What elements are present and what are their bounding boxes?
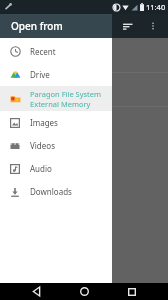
button[interactable]: Audio xyxy=(0,157,112,180)
staticText: Images xyxy=(30,117,58,128)
staticText: Drive xyxy=(30,69,50,80)
staticText: 11:40 xyxy=(146,2,166,12)
button[interactable]: Drive xyxy=(0,63,112,86)
staticText: Audio xyxy=(30,163,52,174)
button[interactable]: Back xyxy=(24,283,48,300)
staticText: Open from xyxy=(11,19,63,33)
staticText: Downloads xyxy=(30,186,72,197)
staticText: External Memory Driver xyxy=(30,99,112,109)
button[interactable]: Sort xyxy=(118,16,138,36)
staticText: Videos xyxy=(30,140,55,151)
button[interactable]: Home xyxy=(72,283,96,300)
button[interactable]: Images xyxy=(0,111,112,134)
button[interactable]: Videos xyxy=(0,134,112,157)
button[interactable]: Paragon File System Link xyxy=(0,86,112,111)
button[interactable]: More options xyxy=(144,17,162,35)
button[interactable]: Recent xyxy=(0,40,112,63)
staticText: Recent xyxy=(30,46,56,57)
button[interactable]: Recents xyxy=(120,283,144,300)
button[interactable]: Downloads xyxy=(0,180,112,203)
staticText: Paragon File System Link xyxy=(30,89,112,99)
